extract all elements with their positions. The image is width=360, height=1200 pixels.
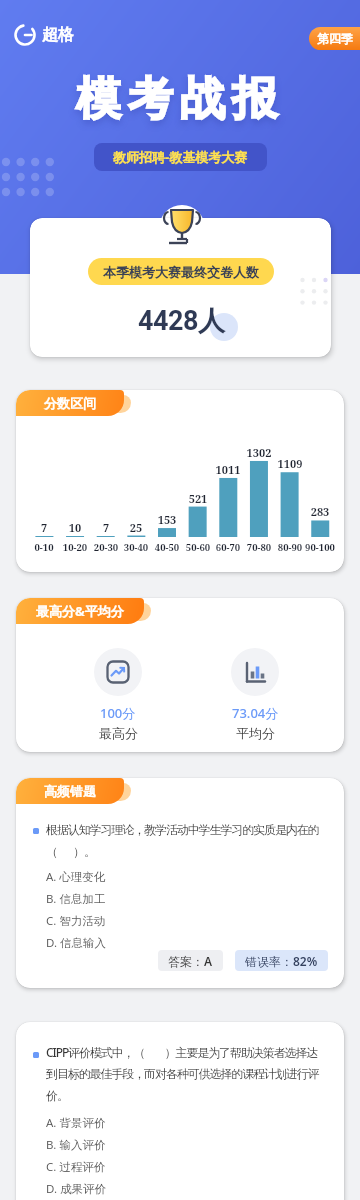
button[interactable]: A. 心理变化 [46,866,106,888]
staticText: CIPP评价模式中，（ ）主要是为了帮助决策者选择达 到目标的最佳手段，而对各种… [46,1044,319,1104]
staticText: 1109 [273,456,307,471]
staticText: 本季模考大赛最终交卷人数 [103,264,259,280]
staticText: C. 智力活动 [46,913,106,929]
staticText: 20-30 [89,541,123,554]
staticText: 4428人 [138,304,225,338]
staticText: 教师招聘-教基模考大赛 [113,148,248,166]
staticText: 10 [58,520,92,535]
staticText: D. 成果评价 [46,1181,107,1197]
staticText: 153 [150,512,184,527]
staticText: 40-50 [150,541,184,554]
staticText: 7 [27,520,61,535]
staticText: 最高分 [99,725,138,741]
staticText: 70-80 [242,541,276,554]
staticText: D. 信息输入 [46,935,107,951]
staticText: 100分 [100,704,136,722]
staticText: 最高分&平均分 [36,602,124,620]
button[interactable]: B. 信息加工 [46,888,106,910]
button[interactable]: 最高分&平均分 [16,598,144,624]
staticText: 25 [119,520,153,535]
staticText: B. 信息加工 [46,891,106,907]
staticText: 第四季 [317,31,353,46]
button[interactable]: 教师招聘-教基模考大赛 [94,143,267,171]
staticText: 7 [89,520,123,535]
staticText: 超格 [42,25,74,45]
button[interactable]: 答案：A [168,950,213,971]
staticText: 30-40 [119,541,153,554]
staticText: 高频错题 [44,783,96,799]
button[interactable]: D. 信息输入 [46,932,107,954]
button[interactable]: 本季模考大赛最终交卷人数 [88,258,274,285]
button[interactable]: 100分 [53,648,183,741]
staticText: 答案：A [168,953,213,969]
staticText: 80-90 [273,541,307,554]
staticText: 分数区间 [44,395,96,411]
button[interactable]: A. 背景评价 [46,1112,106,1134]
button[interactable]: B. 输入评价 [46,1134,106,1156]
button[interactable]: C. 过程评价 [46,1156,106,1178]
button[interactable]: 73.04分 [190,648,320,741]
staticText: 0-10 [27,541,61,554]
staticText: A. 心理变化 [46,869,106,885]
staticText: 错误率：82% [245,953,318,969]
staticText: 1302 [242,445,276,460]
staticText: 10-20 [58,541,92,554]
staticText: A. 背景评价 [46,1115,106,1131]
staticText: 521 [181,491,215,506]
button[interactable]: 错误率：82% [245,950,318,971]
staticText: 50-60 [181,541,215,554]
staticText: 平均分 [236,725,275,741]
staticText: 90-100 [303,541,337,554]
button[interactable]: 第四季 [309,27,360,50]
button[interactable]: C. 智力活动 [46,910,106,932]
staticText: 1011 [211,462,245,477]
button[interactable]: 分数区间 [16,390,124,416]
staticText: 283 [303,504,337,519]
staticText: 模考战报 [0,71,360,128]
staticText: 60-70 [211,541,245,554]
staticText: 根据认知学习理论，教学活动中学生学习的实质是内在的 （ ）。 [46,822,319,860]
button[interactable]: 超格 [14,24,74,46]
button[interactable]: 高频错题 [16,778,124,804]
staticText: C. 过程评价 [46,1159,106,1175]
staticText: B. 输入评价 [46,1137,106,1153]
button[interactable]: D. 成果评价 [46,1178,107,1200]
staticText: 73.04分 [232,704,279,722]
